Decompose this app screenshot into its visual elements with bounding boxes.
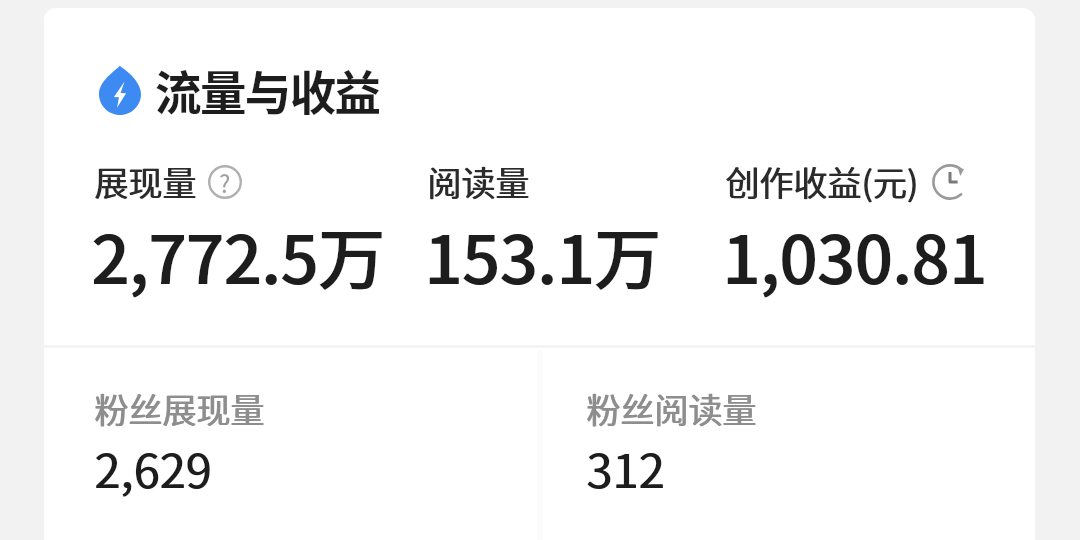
staticText: ? (219, 165, 231, 199)
staticText: 2,772.5万 (91, 206, 385, 303)
staticText: 创作收益(元) (725, 157, 918, 206)
other: 流量与收益 (99, 65, 141, 115)
staticText: 153.1万 (424, 206, 661, 303)
button[interactable]: 流量与收益 (99, 56, 380, 123)
staticText: 1,030.81 (722, 206, 987, 303)
staticText: 阅读量 (427, 157, 529, 206)
staticText: 展现量 (94, 157, 196, 206)
staticText: 粉丝展现量 (95, 384, 265, 433)
staticText: 阅读量 (428, 157, 530, 206)
button[interactable]: 展现量 (83, 157, 385, 303)
button[interactable]: 阅读量 (416, 157, 661, 303)
staticText: 2,629 (94, 433, 212, 501)
staticText: 创作收益(元) (726, 157, 919, 206)
staticText: 粉丝阅读量 (586, 384, 756, 433)
staticText: 2,629 (95, 433, 213, 501)
staticText: 312 (586, 433, 665, 501)
button[interactable]: 粉丝阅读量 (572, 374, 1012, 524)
staticText: 312 (587, 433, 666, 501)
staticText: 1,030.81 (723, 206, 988, 303)
staticText: 2,772.5万 (92, 206, 386, 303)
staticText: 流量与收益 (155, 56, 380, 123)
button[interactable]: 粉丝展现量 (80, 374, 570, 524)
button[interactable]: 收益更新时间 (931, 163, 969, 201)
staticText: 展现量 (95, 157, 197, 206)
button[interactable]: 创作收益(元) (714, 157, 987, 303)
staticText: 粉丝阅读量 (587, 384, 757, 433)
staticText: 粉丝展现量 (94, 384, 264, 433)
button[interactable]: 展现量说明 (208, 165, 242, 199)
staticText: 153.1万 (425, 206, 662, 303)
